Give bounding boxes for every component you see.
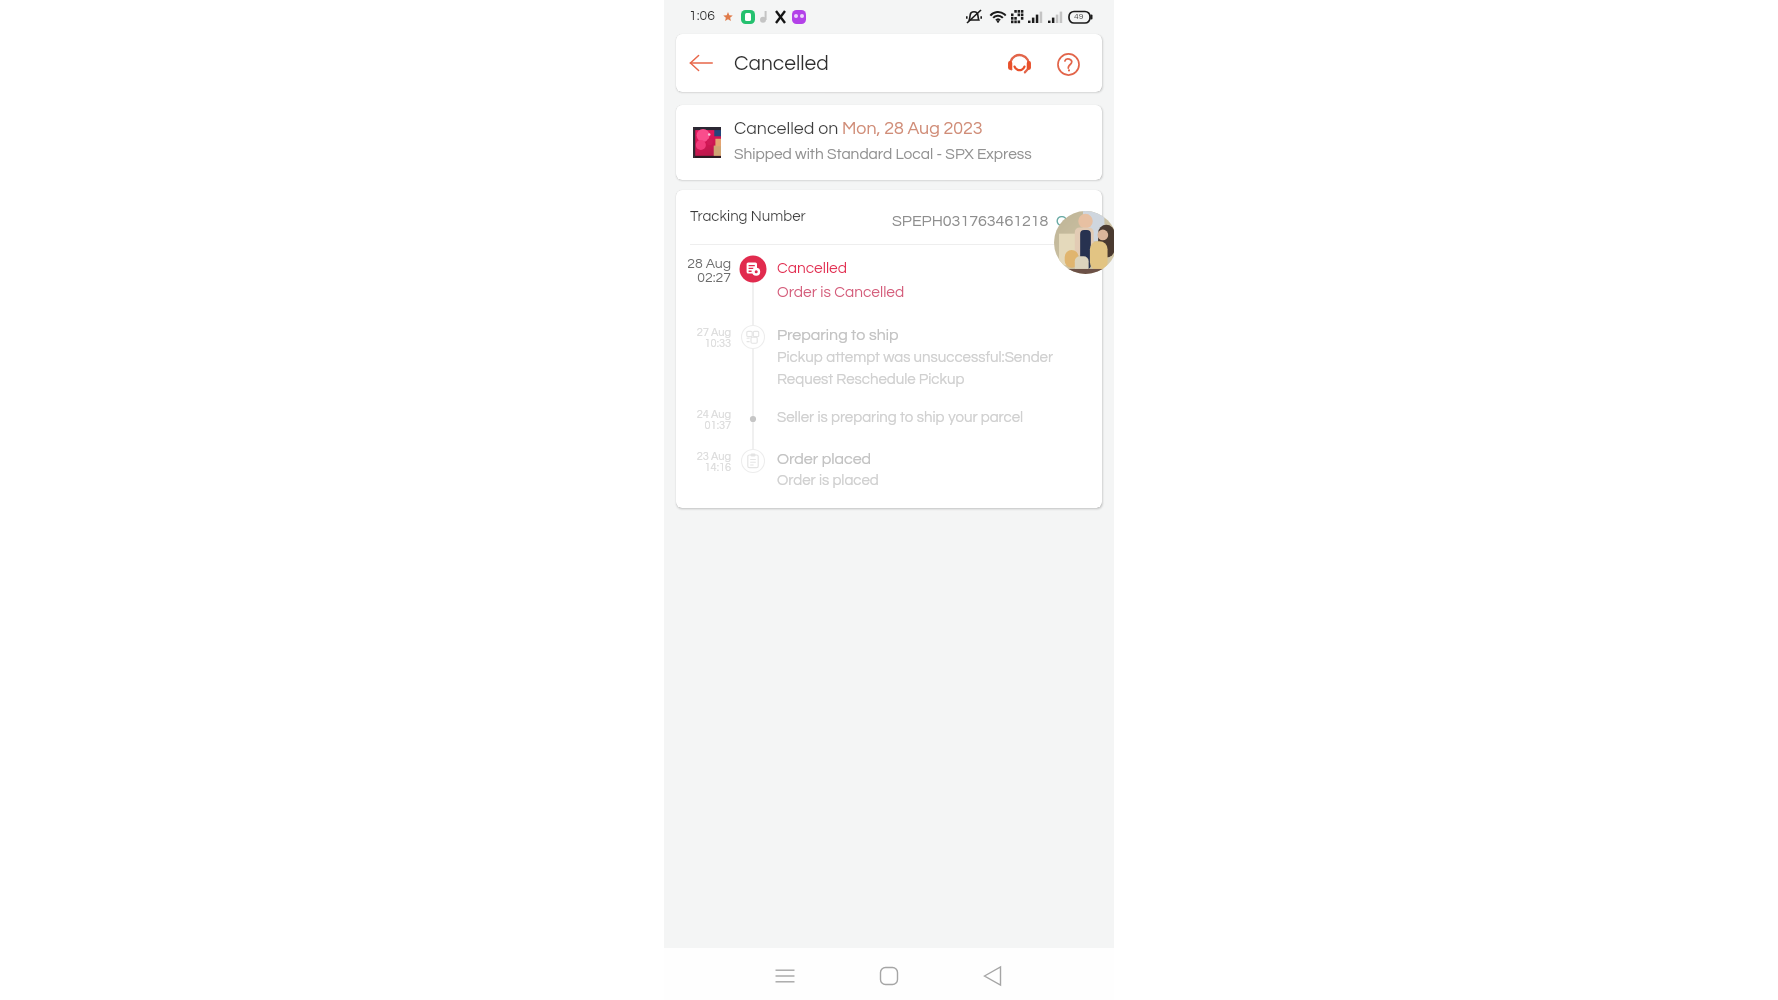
staticText: COPY — [1056, 213, 1100, 229]
staticText: 02:27 — [697, 271, 731, 285]
staticText: Cancelled — [777, 260, 847, 276]
staticText: 49 — [1074, 12, 1084, 21]
button[interactable]: COPY — [1052, 209, 1102, 233]
staticText: Preparing to ship — [777, 327, 899, 343]
button[interactable]: Recent apps — [765, 956, 805, 996]
button[interactable]: Back — [689, 51, 713, 75]
staticText: 23 Aug — [696, 451, 731, 462]
staticText: Seller is preparing to ship your parcel — [777, 410, 1024, 425]
staticText: 24 Aug — [696, 409, 731, 420]
staticText: Cancelled on Mon, 28 Aug 2023 — [734, 119, 983, 137]
button[interactable]: Cancelled on Mon, 28 Aug 2023 — [676, 105, 1102, 180]
staticText: Tracking Number — [690, 209, 806, 224]
staticText: Order is Cancelled — [777, 284, 905, 300]
button[interactable]: Video call overlay — [1054, 211, 1114, 274]
staticText: Cancelled — [734, 53, 829, 75]
staticText: Pickup attempt was unsuccessful:Sender R… — [777, 350, 1054, 387]
staticText: Order placed — [777, 451, 872, 467]
staticText: Order is placed — [777, 473, 879, 488]
staticText: Shipped with Standard Local - SPX Expres… — [734, 146, 1032, 162]
staticText: 28 Aug — [687, 257, 731, 271]
staticText: 14:16 — [704, 462, 731, 473]
staticText: 27 Aug — [696, 327, 731, 338]
staticText: 10:33 — [704, 338, 731, 349]
button[interactable]: Help — [1055, 51, 1082, 78]
staticText: SPEPH031763461218 — [892, 213, 1049, 229]
button[interactable]: Home — [869, 956, 909, 996]
staticText: 1:06 — [689, 9, 715, 23]
staticText: 01:37 — [704, 420, 731, 431]
button[interactable]: Customer support — [1006, 51, 1033, 78]
button[interactable]: Back — [973, 956, 1013, 996]
